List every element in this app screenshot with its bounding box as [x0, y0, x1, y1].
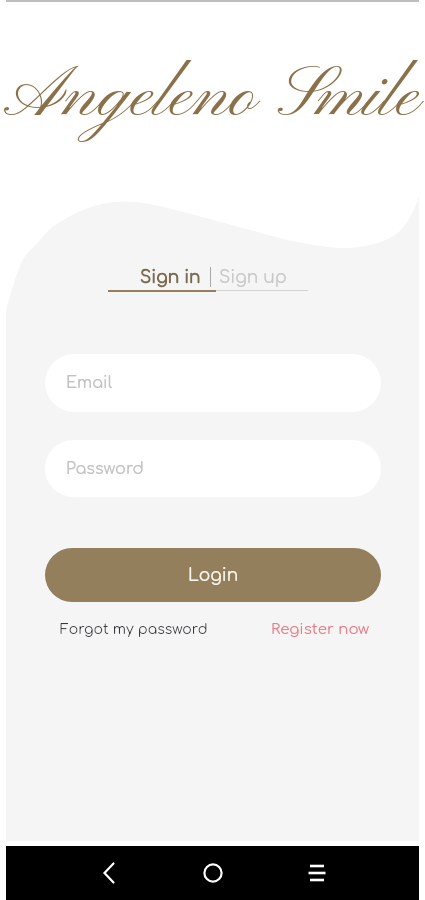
button[interactable]: Sign up — [213, 262, 308, 292]
staticText: Angeleno Smile — [4, 53, 420, 143]
staticText: Sign in — [140, 268, 201, 287]
button[interactable]: Sign in — [108, 262, 210, 292]
button[interactable]: Login — [45, 548, 381, 602]
staticText: Forgot my password — [60, 622, 208, 638]
button[interactable]: Home — [189, 849, 237, 897]
button[interactable]: Recent apps — [293, 849, 341, 897]
staticText: Register now — [271, 621, 370, 638]
button[interactable]: Back — [85, 849, 133, 897]
button[interactable]: Register now — [263, 616, 378, 642]
staticText: Password — [66, 460, 144, 478]
button[interactable]: Password — [45, 440, 381, 497]
staticText: Email — [66, 374, 113, 392]
button[interactable]: Email — [45, 354, 381, 412]
staticText: Login — [188, 566, 239, 585]
button[interactable]: Forgot my password — [52, 617, 216, 643]
staticText: Sign up — [219, 268, 287, 287]
